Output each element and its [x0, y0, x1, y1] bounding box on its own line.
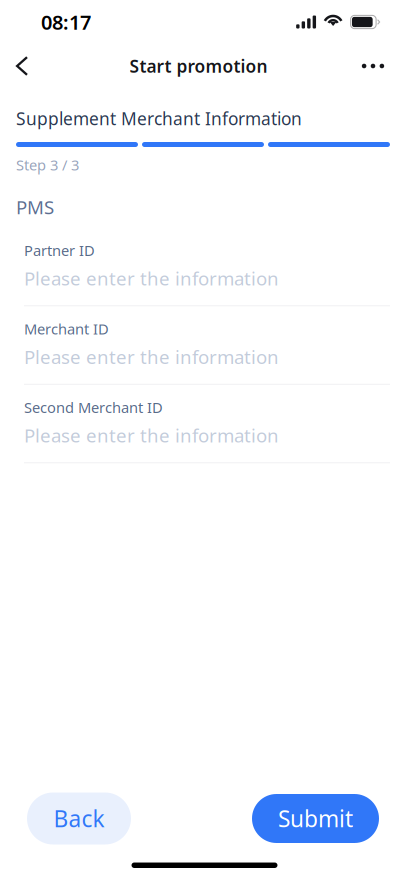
- staticText: Partner ID: [24, 240, 95, 260]
- staticText: Supplement Merchant Information: [16, 107, 302, 130]
- button[interactable]: Second Merchant ID: [0, 400, 409, 479]
- button[interactable]: Back: [27, 792, 131, 844]
- staticText: Please enter the information: [24, 266, 279, 291]
- staticText: Start promotion: [129, 54, 267, 77]
- staticText: 08:17: [41, 9, 91, 35]
- staticText: Second Merchant ID: [24, 397, 163, 417]
- button[interactable]: Back: [0, 44, 44, 88]
- staticText: Back: [53, 803, 104, 833]
- button[interactable]: Merchant ID: [0, 322, 409, 400]
- staticText: Merchant ID: [24, 319, 109, 338]
- staticText: PMS: [16, 194, 54, 219]
- staticText: Please enter the information: [24, 344, 279, 369]
- staticText: Step 3 / 3: [16, 155, 79, 174]
- button[interactable]: Submit: [252, 794, 379, 843]
- staticText: Please enter the information: [24, 423, 279, 448]
- staticText: Submit: [278, 803, 353, 833]
- button[interactable]: Partner ID: [0, 243, 409, 322]
- button[interactable]: More options: [351, 44, 395, 88]
